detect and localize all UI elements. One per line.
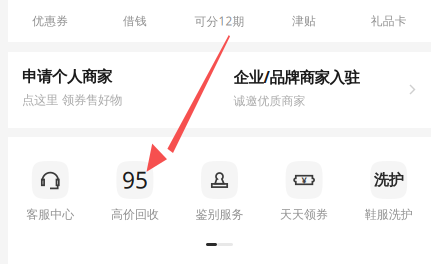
button[interactable]: ¥ [262, 161, 346, 222]
staticText: 礼品卡 [371, 14, 407, 28]
staticText: 洗护 [374, 170, 404, 189]
staticText: 企业/品牌商家入驻 [233, 67, 359, 87]
button[interactable]: 礼品卡 [346, 0, 431, 42]
button[interactable]: 洗护 [346, 161, 431, 222]
staticText: ¥ [302, 174, 307, 186]
staticText: 津贴 [292, 14, 316, 28]
staticText: 点这里 领券售好物 [22, 92, 122, 108]
staticText: 申请个人商家 [22, 67, 112, 86]
button[interactable]: 鉴别服务 [177, 161, 262, 222]
button[interactable]: 95 [93, 161, 177, 222]
staticText: 优惠券 [32, 14, 68, 28]
button[interactable]: 客服中心 [8, 161, 93, 222]
button[interactable]: 借钱 [93, 0, 177, 42]
staticText: 高价回收 [111, 207, 159, 222]
staticText: 可分12期 [194, 13, 244, 29]
button[interactable]: 企业/品牌商家入驻 [219, 52, 431, 128]
staticText: 客服中心 [26, 207, 74, 222]
staticText: 95 [122, 165, 148, 195]
staticText: 天天领券 [280, 207, 328, 222]
button[interactable]: 申请个人商家 [8, 52, 219, 128]
staticText: 借钱 [123, 14, 147, 28]
staticText: 鞋服洗护 [365, 207, 413, 222]
staticText: 鉴别服务 [195, 207, 243, 222]
staticText: 诚邀优质商家 [233, 93, 305, 108]
button[interactable]: 津贴 [262, 0, 346, 42]
button[interactable]: 可分12期 [177, 0, 262, 42]
button[interactable]: 优惠券 [8, 0, 93, 42]
